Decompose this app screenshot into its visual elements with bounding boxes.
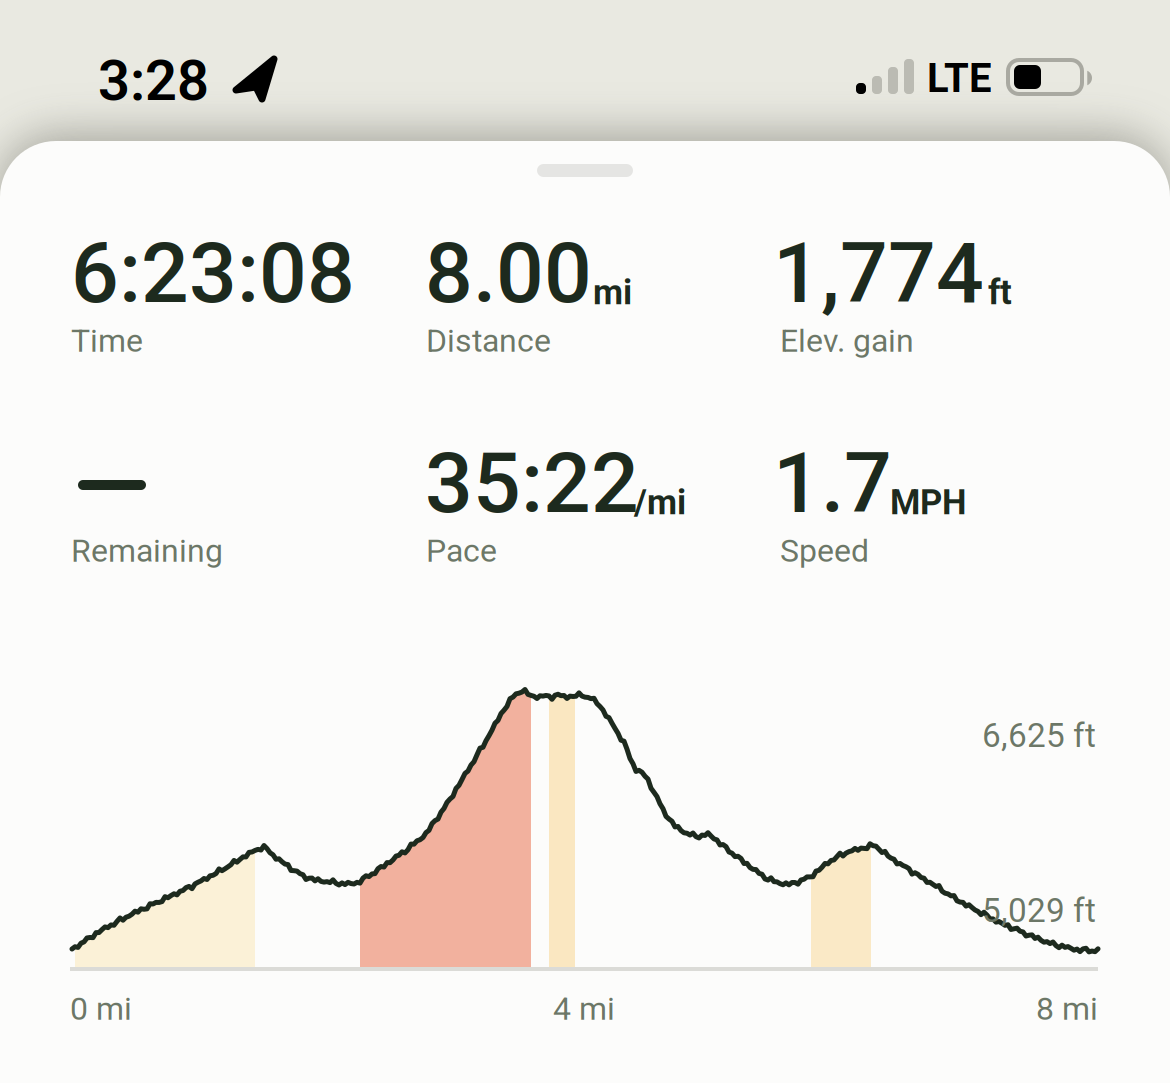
staticText: 5,029 ft (982, 891, 1096, 930)
staticText: mi (593, 272, 632, 313)
staticText: Remaining (71, 532, 223, 569)
staticText: 1,774 (773, 224, 984, 322)
staticText: 8 mi (1036, 990, 1098, 1027)
button[interactable]: 8.00 (425, 224, 755, 384)
staticText: 8.00 (425, 224, 592, 322)
button[interactable]: 35:22 (425, 434, 755, 594)
staticText: MPH (890, 482, 966, 523)
button[interactable]: 6:23:08 (71, 224, 401, 384)
button[interactable]: 1.7 (773, 434, 1103, 594)
staticText: 6,625 ft (982, 716, 1096, 755)
staticText: 0 mi (70, 990, 132, 1027)
staticText: 6:23:08 (71, 224, 355, 322)
staticText: LTE (927, 55, 992, 102)
staticText: Elev. gain (780, 322, 914, 359)
staticText: 3:28 (98, 48, 209, 114)
staticText: 35:22 (425, 434, 639, 532)
staticText: /mi (634, 482, 686, 523)
button[interactable]: Remaining (71, 434, 401, 594)
staticText: 1.7 (773, 434, 892, 532)
staticText: Distance (426, 322, 551, 359)
staticText: ft (988, 272, 1012, 313)
staticText: Time (71, 322, 143, 359)
staticText: Speed (780, 532, 869, 569)
staticText: Pace (426, 532, 497, 569)
staticText: 4 mi (553, 990, 615, 1027)
button[interactable]: 1,774 (773, 224, 1103, 384)
